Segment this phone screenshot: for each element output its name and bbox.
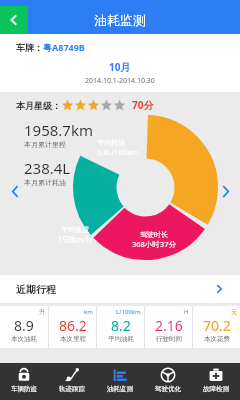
staticText: 故障检测 bbox=[203, 385, 229, 393]
staticText: 行驶时间 bbox=[156, 335, 182, 343]
button[interactable]: 轨迹跟踪 bbox=[48, 363, 96, 400]
staticText: 8.2 bbox=[111, 316, 131, 335]
button[interactable]: 车辆防盗 bbox=[0, 363, 48, 400]
button[interactable]: Previous month bbox=[4, 180, 26, 202]
staticText: 本月累计里程 bbox=[24, 140, 66, 149]
staticText: 近期行程 bbox=[16, 283, 56, 296]
button[interactable]: km bbox=[49, 306, 96, 348]
staticText: 粤A8749B bbox=[43, 41, 85, 53]
button[interactable]: 近期行程 bbox=[0, 275, 240, 303]
button[interactable]: L/100km bbox=[97, 306, 144, 348]
staticText: 本月累计耗油 bbox=[24, 178, 66, 187]
staticText: H bbox=[184, 308, 189, 316]
staticText: 平均耗油 bbox=[97, 138, 125, 147]
button[interactable]: 升 bbox=[0, 306, 48, 348]
staticText: 平均速度 bbox=[61, 225, 89, 234]
button[interactable]: Back bbox=[0, 6, 28, 34]
staticText: L/100km bbox=[116, 308, 141, 316]
staticText: 驾驶时长 bbox=[140, 230, 168, 239]
staticText: 轨迹跟踪 bbox=[59, 385, 85, 393]
staticText: 平均油耗 bbox=[108, 335, 134, 343]
staticText: 238.4L bbox=[24, 158, 71, 178]
button[interactable]: 油耗监测 bbox=[96, 363, 144, 400]
staticText: 油耗监测 bbox=[107, 385, 133, 393]
button[interactable]: Next month bbox=[214, 180, 236, 202]
button[interactable]: 元 bbox=[193, 306, 240, 348]
staticText: 车牌： bbox=[16, 42, 43, 53]
staticText: 2014.10.1-2014.10.30 bbox=[85, 76, 155, 86]
staticText: 10月 bbox=[109, 60, 131, 74]
staticText: 本次油耗 bbox=[11, 335, 37, 343]
staticText: 本月星级： bbox=[16, 100, 61, 111]
staticText: 元 bbox=[231, 308, 237, 316]
staticText: 70分 bbox=[132, 98, 154, 112]
staticText: 150km/h bbox=[58, 234, 92, 245]
staticText: 2.16 bbox=[155, 316, 183, 335]
staticText: 368小时37分 bbox=[132, 239, 176, 249]
staticText: 驾驶优化 bbox=[155, 385, 181, 393]
staticText: 70.2 bbox=[203, 316, 231, 335]
button[interactable]: H bbox=[145, 306, 192, 348]
staticText: 1958.7km bbox=[24, 120, 93, 140]
staticText: 9.8L/100km bbox=[97, 147, 139, 157]
staticText: 升 bbox=[39, 308, 45, 316]
button[interactable]: 故障检测 bbox=[192, 363, 240, 400]
staticText: 油耗监测 bbox=[94, 12, 146, 28]
staticText: 本次里程 bbox=[60, 335, 86, 343]
staticText: km bbox=[84, 308, 93, 316]
staticText: 8.9 bbox=[14, 316, 34, 335]
staticText: 86.2 bbox=[59, 316, 87, 335]
button[interactable]: 驾驶优化 bbox=[144, 363, 192, 400]
staticText: 本次花费 bbox=[204, 335, 230, 343]
staticText: 车辆防盗 bbox=[11, 385, 37, 393]
